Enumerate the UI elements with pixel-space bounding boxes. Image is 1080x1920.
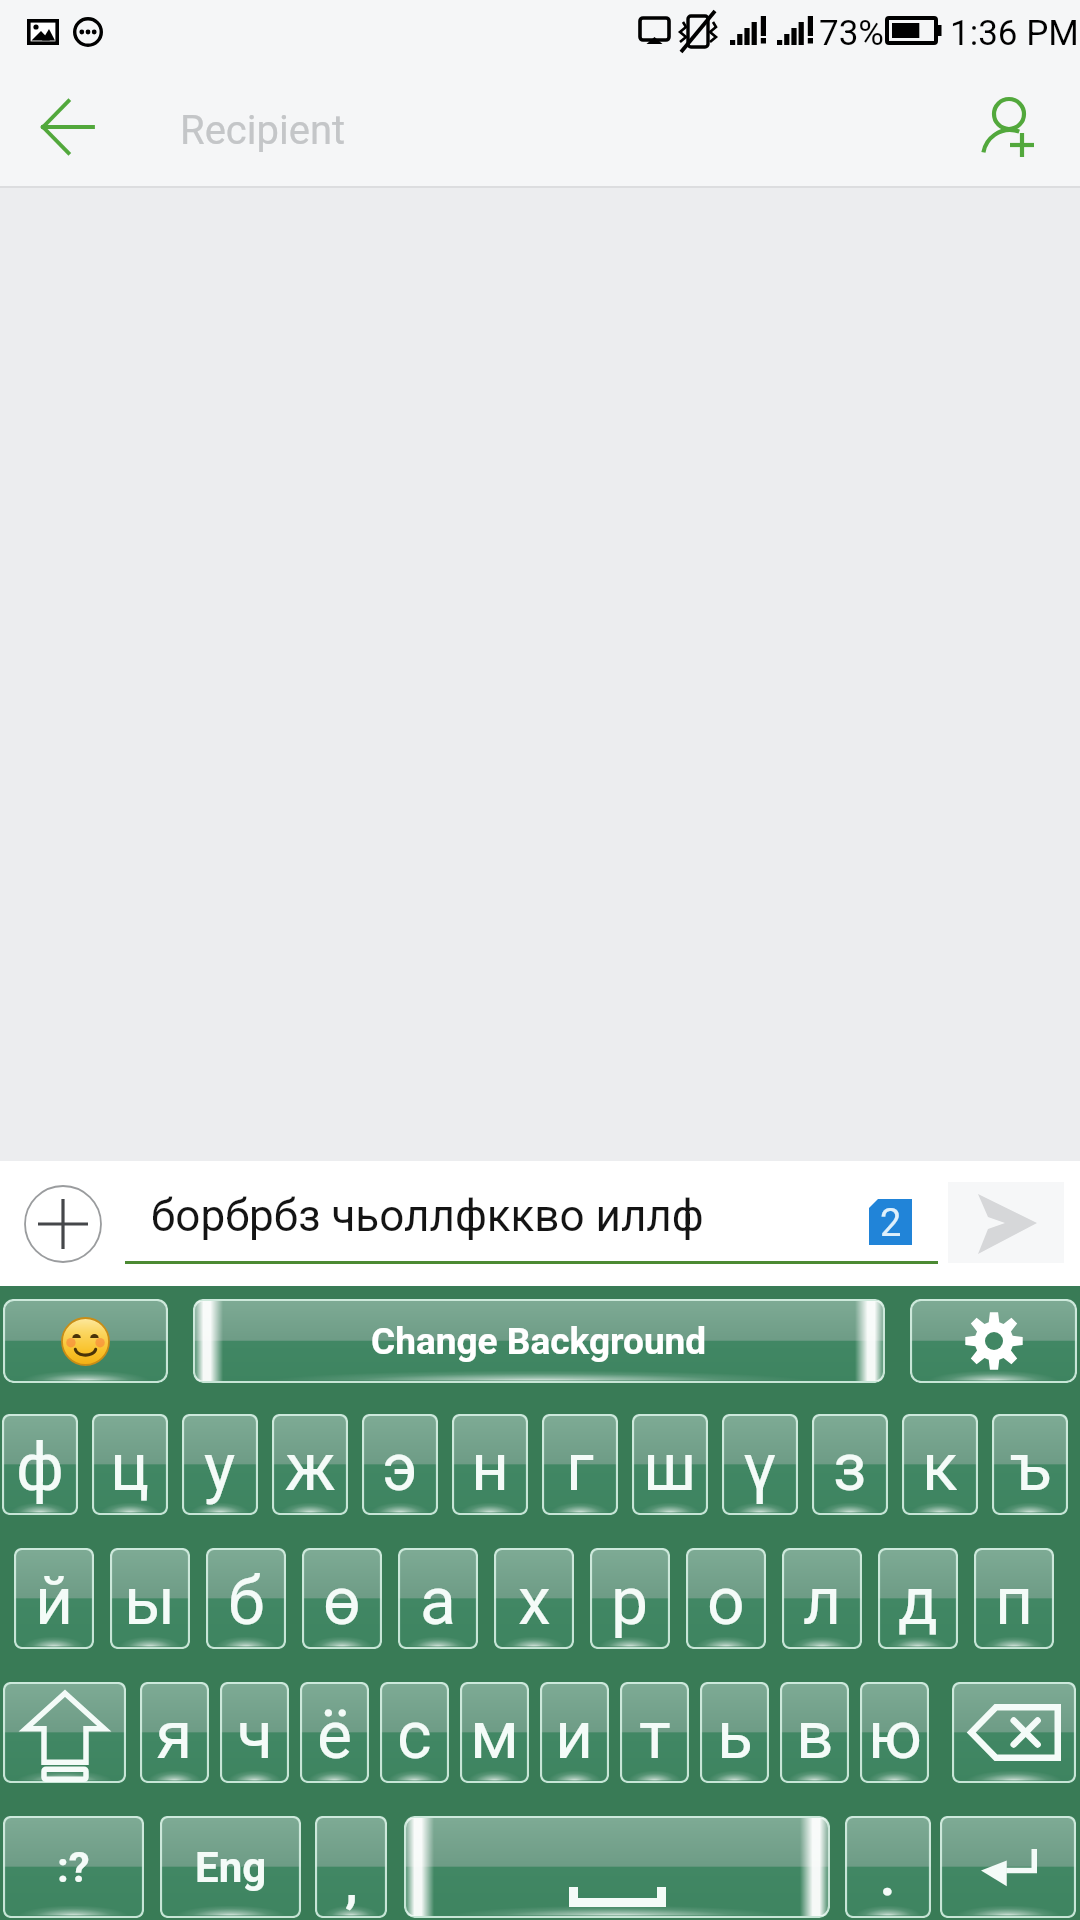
staticText: у	[204, 1429, 236, 1506]
staticText: ө	[323, 1563, 361, 1640]
button[interactable]: Add attachment	[23, 1184, 103, 1264]
staticText: .	[880, 1847, 896, 1908]
button[interactable]: с	[380, 1682, 449, 1783]
button[interactable]: Emoji	[3, 1299, 168, 1383]
button[interactable]: Add recipient	[958, 78, 1062, 182]
staticText: ж	[285, 1429, 336, 1506]
button[interactable]: ё	[300, 1682, 369, 1783]
staticText: ю	[868, 1697, 922, 1774]
button[interactable]: ю	[860, 1682, 929, 1783]
button[interactable]: т	[620, 1682, 689, 1783]
button[interactable]: а	[398, 1548, 478, 1649]
button[interactable]: Eng	[160, 1816, 301, 1918]
staticText: я	[156, 1697, 193, 1774]
button[interactable]: ъ	[992, 1414, 1068, 1515]
staticText: й	[35, 1563, 74, 1640]
staticText: м	[470, 1697, 519, 1774]
button[interactable]: п	[974, 1548, 1054, 1649]
staticText: борбрбз чьоллфккво иллф	[151, 1190, 704, 1242]
staticText: Eng	[195, 1843, 267, 1892]
button[interactable]: й	[14, 1548, 94, 1649]
staticText: ,	[345, 1853, 358, 1914]
button[interactable]: в	[780, 1682, 849, 1783]
staticText: ү	[743, 1429, 777, 1506]
button[interactable]: .	[845, 1816, 931, 1918]
staticText: п	[995, 1563, 1034, 1640]
staticText: о	[707, 1563, 745, 1640]
staticText: ч	[237, 1697, 273, 1774]
button[interactable]: ь	[700, 1682, 769, 1783]
staticText: ц	[110, 1429, 150, 1506]
staticText: д	[898, 1563, 938, 1640]
button[interactable]: ү	[722, 1414, 798, 1515]
button[interactable]: Recipient	[140, 74, 940, 186]
button[interactable]: з	[812, 1414, 888, 1515]
staticText: г	[566, 1429, 594, 1506]
button[interactable]: ц	[92, 1414, 168, 1515]
staticText: 1:36 PM	[950, 13, 1079, 54]
staticText: ш	[643, 1429, 697, 1506]
button[interactable]: ж	[272, 1414, 348, 1515]
staticText: в	[796, 1697, 834, 1774]
button[interactable]: н	[452, 1414, 528, 1515]
button[interactable]: л	[782, 1548, 862, 1649]
staticText: б	[228, 1563, 265, 1640]
button[interactable]: ч	[220, 1682, 289, 1783]
button[interactable]: м	[460, 1682, 529, 1783]
button[interactable]: и	[540, 1682, 609, 1783]
button[interactable]: г	[542, 1414, 618, 1515]
button[interactable]: Enter	[940, 1816, 1076, 1918]
button[interactable]: у	[182, 1414, 258, 1515]
button[interactable]: о	[686, 1548, 766, 1649]
staticText: к	[922, 1429, 958, 1506]
button[interactable]: ф	[2, 1414, 78, 1515]
staticText: Change Background	[371, 1320, 707, 1363]
button[interactable]: ө	[302, 1548, 382, 1649]
staticText: :?	[57, 1843, 90, 1892]
button[interactable]: ы	[110, 1548, 190, 1649]
staticText: з	[833, 1429, 867, 1506]
button[interactable]: я	[140, 1682, 209, 1783]
staticText: ь	[717, 1697, 753, 1774]
button[interactable]: Shift	[3, 1682, 126, 1783]
button[interactable]: э	[362, 1414, 438, 1515]
staticText: э	[382, 1429, 418, 1506]
staticText: а	[420, 1563, 456, 1640]
button[interactable]: борбрбз чьоллфккво иллф	[125, 1167, 865, 1263]
staticText: и	[555, 1697, 594, 1774]
button[interactable]: к	[902, 1414, 978, 1515]
button[interactable]: ш	[632, 1414, 708, 1515]
button[interactable]: ,	[315, 1816, 387, 1918]
button[interactable]: Back	[16, 75, 120, 179]
staticText: Recipient	[180, 107, 346, 154]
button[interactable]: х	[494, 1548, 574, 1649]
button[interactable]: Send	[948, 1182, 1064, 1263]
staticText: ы	[124, 1563, 176, 1640]
staticText: ф	[16, 1429, 64, 1506]
button[interactable]: б	[206, 1548, 286, 1649]
button[interactable]: Settings	[910, 1299, 1077, 1383]
button[interactable]: Change Background	[193, 1299, 885, 1383]
button[interactable]: Space	[404, 1816, 830, 1918]
staticText: ё	[317, 1697, 352, 1774]
staticText: ъ	[1010, 1429, 1051, 1506]
button[interactable]: Backspace	[952, 1682, 1076, 1783]
button[interactable]: д	[878, 1548, 958, 1649]
staticText: 2	[880, 1201, 902, 1246]
staticText: л	[803, 1563, 842, 1640]
staticText: т	[639, 1697, 671, 1774]
button[interactable]: :?	[3, 1816, 144, 1918]
staticText: р	[611, 1563, 649, 1640]
staticText: н	[471, 1429, 510, 1506]
staticText: с	[397, 1697, 432, 1774]
button[interactable]: р	[590, 1548, 670, 1649]
staticText: 73%	[819, 13, 884, 54]
staticText: х	[518, 1563, 551, 1640]
